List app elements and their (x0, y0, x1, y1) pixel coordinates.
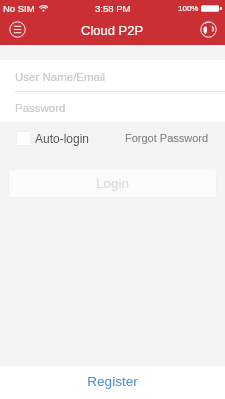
staticText: 3:58 PM (95, 3, 131, 14)
button[interactable]: User Name/Email (0, 60, 225, 91)
button[interactable]: Forgot Password (125, 132, 209, 144)
staticText: 100% (178, 4, 199, 13)
staticText: Password (15, 102, 66, 115)
button[interactable]: Password (0, 92, 225, 122)
staticText: User Name/Email (15, 71, 106, 84)
button[interactable]: Auto-login (16, 131, 90, 146)
staticText: Auto-login (35, 132, 90, 145)
staticText: Forgot Password (125, 132, 209, 144)
staticText: No SIM (3, 3, 35, 14)
button[interactable]: Menu (7, 19, 27, 39)
staticText: Login (96, 176, 130, 191)
button[interactable]: Register (0, 366, 225, 399)
staticText: Cloud P2P (81, 23, 144, 38)
button[interactable]: Select region (198, 19, 218, 39)
button[interactable]: Login (8, 169, 217, 198)
staticText: Register (87, 374, 138, 389)
